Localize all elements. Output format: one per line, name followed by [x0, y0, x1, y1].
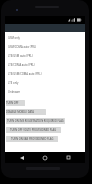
- button[interactable]: LTE/GSM auto (PRL): [8, 51, 81, 60]
- staticText: LTE only: [8, 81, 19, 85]
- staticText: TURN OFF RADIO: [6, 101, 25, 105]
- button[interactable]: TURN OFF RADIO: [6, 100, 25, 106]
- button[interactable]: LTE/GSM/CDMA auto (PRL): [8, 69, 81, 78]
- button[interactable]: TURN ON IMS REGISTRATION REQUIRED FLAG: [6, 118, 65, 124]
- staticText: LTE/GSM auto (PRL): [8, 54, 33, 58]
- button[interactable]: TURN OFF VOLTE PROVISIONED FLAG: [6, 127, 61, 133]
- staticText: GSM only: [8, 36, 20, 40]
- staticText: LTE/GSM/CDMA auto (PRL): [8, 72, 42, 76]
- button[interactable]: Back: [16, 152, 28, 163]
- button[interactable]: GSM/CDMA auto (PRL): [8, 42, 81, 51]
- button[interactable]: LTE/CDMA auto (PRL): [8, 60, 81, 69]
- button[interactable]: Unknown: [8, 87, 81, 96]
- button[interactable]: DISABLE MOBILE DATA PROVISIONING: [6, 109, 46, 115]
- staticText: Unknown: [8, 90, 21, 94]
- button[interactable]: Recents: [62, 152, 74, 163]
- button[interactable]: GSM only: [8, 33, 81, 42]
- button[interactable]: TURN ON EAB PROVISIONED FLAG: [6, 136, 58, 142]
- staticText: TURN OFF VOLTE PROVISIONED FLAG: [10, 128, 57, 132]
- button[interactable]: LTE only: [8, 78, 81, 87]
- staticText: TURN ON EAB PROVISIONED FLAG: [11, 137, 54, 141]
- button[interactable]: Home: [39, 152, 51, 163]
- staticText: GSM/CDMA auto (PRL): [8, 45, 37, 49]
- staticText: DISABLE MOBILE DATA PROVISIONING: [6, 110, 46, 114]
- staticText: TURN ON IMS REGISTRATION REQUIRED FLAG: [7, 119, 64, 123]
- staticText: LTE/CDMA auto (PRL): [8, 63, 35, 67]
